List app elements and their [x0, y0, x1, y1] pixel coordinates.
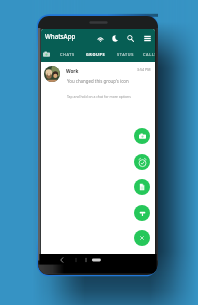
- staticText: CHATS: [60, 52, 75, 57]
- button[interactable]: STATUS: [113, 46, 137, 63]
- staticText: CALLS: [143, 52, 155, 57]
- staticText: Work: [66, 68, 79, 74]
- staticText: WhatsApp: [45, 32, 76, 40]
- button[interactable]: Dark mode: [108, 30, 122, 46]
- button[interactable]: Reminder: [134, 154, 150, 170]
- button[interactable]: Camera: [134, 128, 150, 144]
- staticText: GROUPS: [86, 52, 106, 57]
- button[interactable]: Search: [123, 30, 137, 46]
- button[interactable]: More options: [140, 30, 154, 46]
- button[interactable]: Document: [134, 179, 150, 195]
- button[interactable]: Wi-Fi: [93, 30, 107, 46]
- staticText: STATUS: [117, 52, 134, 57]
- button[interactable]: GROUPS: [84, 46, 108, 63]
- button[interactable]: Close: [134, 230, 150, 246]
- staticText: You changed this group's icon: [67, 78, 129, 84]
- button[interactable]: Camera: [41, 46, 52, 63]
- staticText: Tap and hold on a chat for more options: [67, 94, 131, 99]
- button[interactable]: [41, 62, 155, 85]
- button[interactable]: Broadcast: [134, 205, 150, 221]
- staticText: 3:54 PM: [137, 67, 151, 72]
- button[interactable]: CALLS: [138, 46, 155, 63]
- button[interactable]: CHATS: [55, 46, 79, 63]
